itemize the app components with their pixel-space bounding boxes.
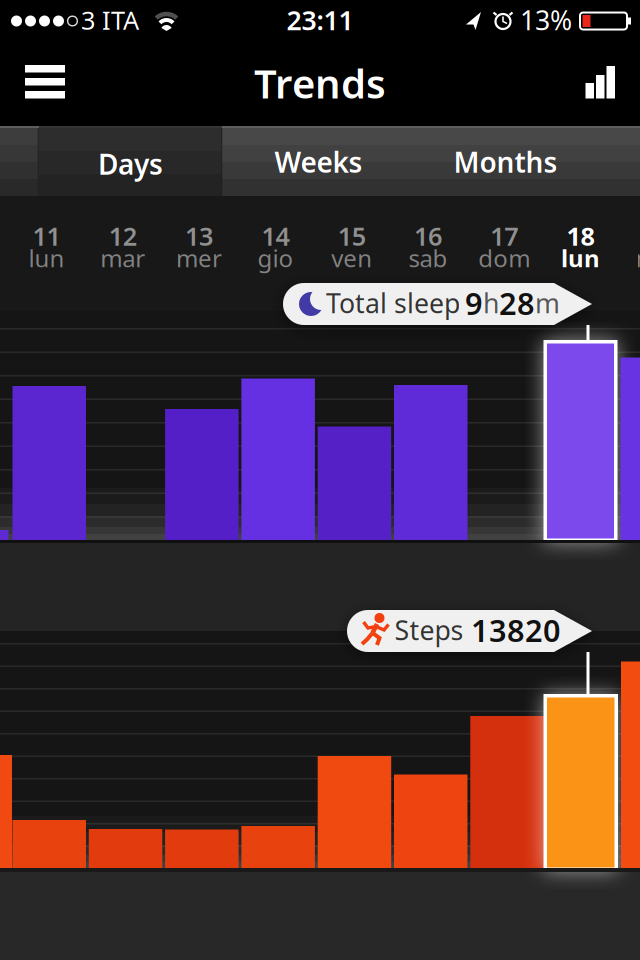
button[interactable] <box>165 409 239 540</box>
staticText: m <box>535 285 560 321</box>
button[interactable] <box>543 694 618 871</box>
button[interactable] <box>165 829 239 868</box>
staticText: 17 <box>490 219 518 253</box>
staticText: Days <box>98 145 163 183</box>
staticText: Total sleep <box>326 285 460 321</box>
staticText: 13% <box>520 2 572 38</box>
button[interactable] <box>470 716 544 868</box>
staticText: Steps <box>394 612 463 648</box>
button[interactable] <box>543 340 617 542</box>
button[interactable] <box>585 66 615 99</box>
staticText: 18 <box>567 219 595 253</box>
staticText: mar <box>100 242 145 274</box>
staticText: 23:11 <box>286 2 353 38</box>
staticText: ven <box>331 242 372 274</box>
button[interactable] <box>318 426 391 540</box>
button[interactable] <box>620 357 640 540</box>
staticText: 14 <box>261 219 289 253</box>
staticText: lun <box>28 242 64 274</box>
staticText: 15 <box>338 219 366 253</box>
staticText: Months <box>453 143 557 181</box>
button[interactable] <box>241 378 315 540</box>
staticText: 16 <box>414 219 442 253</box>
button[interactable]: Months <box>412 126 599 196</box>
button[interactable]: 15 <box>314 198 390 298</box>
staticText: Weeks <box>274 143 362 181</box>
staticText: 28 <box>499 283 535 323</box>
button[interactable]: 14 <box>237 198 313 298</box>
staticText: lun <box>561 242 600 274</box>
button[interactable]: 11 <box>8 198 84 298</box>
staticText: gio <box>257 242 293 274</box>
staticText: mer <box>176 242 222 274</box>
button[interactable]: 12 <box>85 198 161 298</box>
button[interactable]: Days <box>39 128 222 196</box>
staticText: mar <box>635 242 640 274</box>
staticText: sab <box>408 242 447 274</box>
staticText: 11 <box>32 219 60 253</box>
button[interactable]: Weeks <box>225 126 412 196</box>
button[interactable] <box>25 65 65 99</box>
button[interactable] <box>241 826 315 868</box>
button[interactable]: 16 <box>390 198 466 298</box>
button[interactable] <box>394 385 467 540</box>
staticText: h <box>483 285 499 321</box>
button[interactable]: 13 <box>161 198 237 298</box>
staticText: 9 <box>465 283 483 323</box>
button[interactable] <box>12 386 86 540</box>
staticText: 12 <box>109 219 137 253</box>
staticText: 3 ITA <box>81 3 139 37</box>
staticText: dom <box>478 242 530 274</box>
staticText: 13 <box>185 219 213 253</box>
staticText: 13820 <box>471 610 561 650</box>
button[interactable]: 17 <box>466 198 542 298</box>
button[interactable]: 18 <box>543 198 619 298</box>
staticText: Trends <box>254 56 386 109</box>
button[interactable] <box>394 774 467 868</box>
button[interactable] <box>12 820 86 868</box>
